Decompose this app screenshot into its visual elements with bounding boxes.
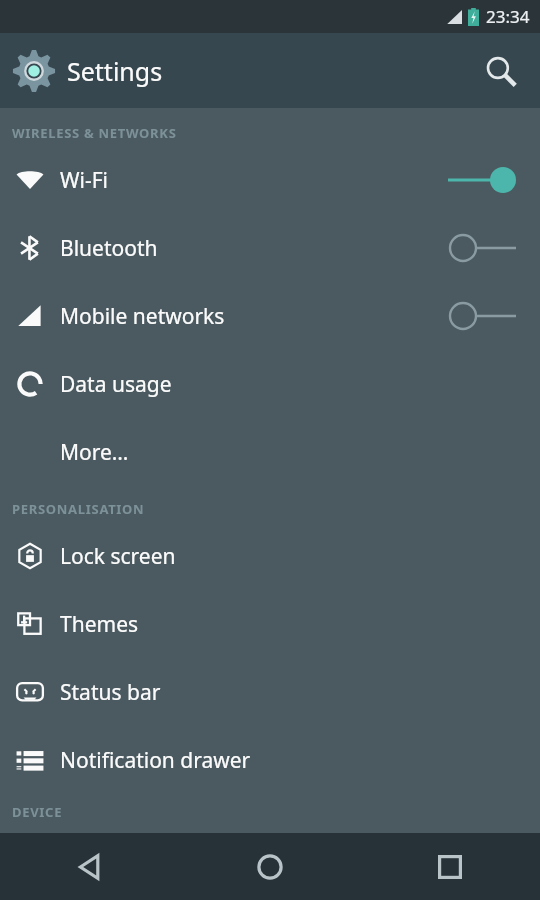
staticText: Notification drawer — [60, 746, 251, 775]
staticText: Status bar — [60, 678, 161, 707]
button[interactable]: Lock screen — [0, 522, 540, 590]
button[interactable]: Notification drawer — [0, 726, 540, 794]
button[interactable]: Status bar — [0, 658, 540, 726]
staticText: Themes — [60, 610, 139, 639]
staticText: 23:34 — [486, 5, 530, 28]
staticText: Settings — [67, 54, 163, 88]
button[interactable]: Bluetooth — [0, 214, 540, 282]
button[interactable]: Themes — [0, 590, 540, 658]
button[interactable]: Wi-Fi toggle — [444, 156, 520, 204]
staticText: Lock screen — [60, 542, 176, 571]
staticText: DEVICE — [12, 803, 63, 821]
staticText: Bluetooth — [60, 234, 158, 263]
button[interactable]: Mobile networks — [0, 282, 540, 350]
staticText: Wi-Fi — [60, 166, 109, 195]
button[interactable]: Data usage — [0, 350, 540, 418]
button[interactable]: Search — [476, 47, 524, 95]
staticText: PERSONALISATION — [12, 500, 145, 518]
button[interactable]: Back — [0, 833, 180, 900]
button[interactable]: Mobile networks toggle — [444, 292, 520, 340]
button[interactable]: Wi-Fi — [0, 146, 540, 214]
staticText: More… — [60, 438, 129, 467]
staticText: Data usage — [60, 370, 172, 399]
button[interactable]: Recent apps — [360, 833, 540, 900]
button[interactable]: More… — [0, 418, 540, 486]
button[interactable]: Home — [180, 833, 360, 900]
staticText: Mobile networks — [60, 302, 225, 331]
button[interactable]: Bluetooth toggle — [444, 224, 520, 272]
staticText: WIRELESS & NETWORKS — [12, 124, 177, 142]
